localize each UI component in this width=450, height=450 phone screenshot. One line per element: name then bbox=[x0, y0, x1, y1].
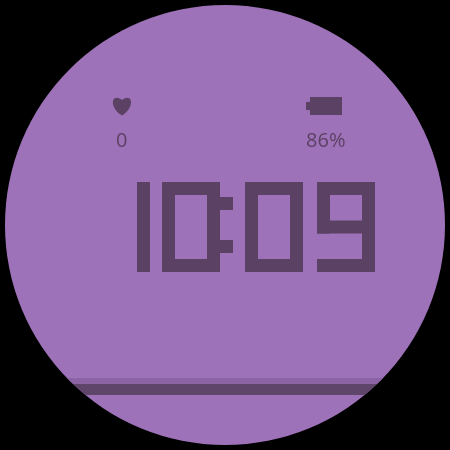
button[interactable]: Watch face bbox=[0, 0, 450, 450]
